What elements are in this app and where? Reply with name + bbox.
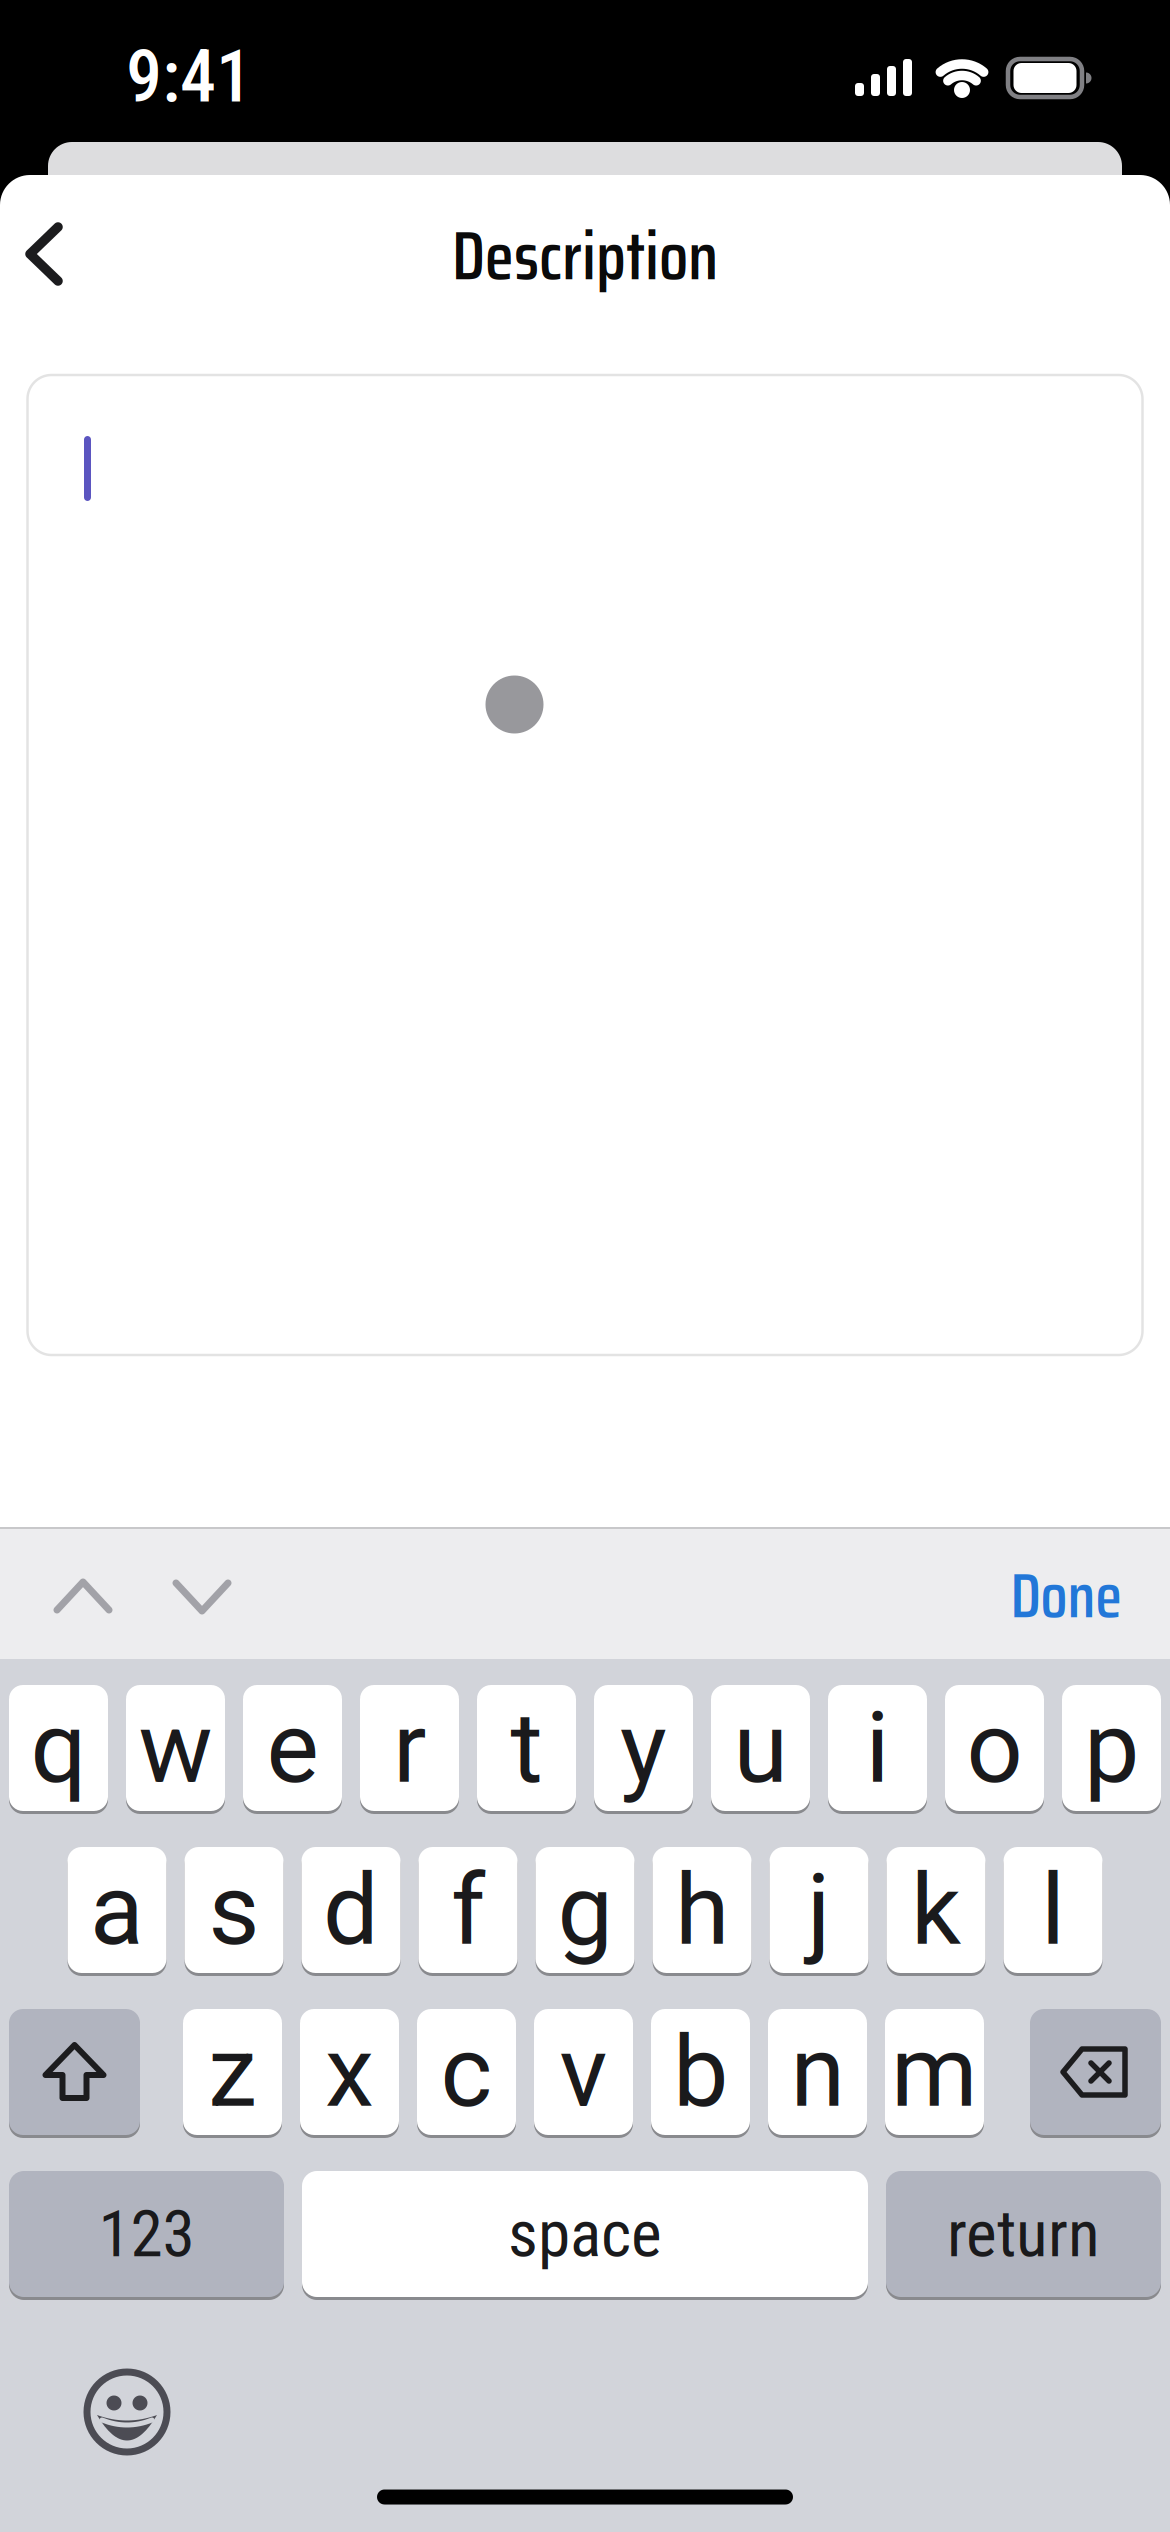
button[interactable]: l [1003, 1847, 1102, 1973]
button[interactable]: h [652, 1847, 751, 1973]
button[interactable]: k [886, 1847, 985, 1973]
button[interactable]: y [594, 1685, 693, 1811]
button[interactable]: m [885, 2009, 984, 2135]
button[interactable]: Emoji [79, 2364, 175, 2460]
staticText: q [30, 1690, 86, 1806]
button[interactable]: u [711, 1685, 810, 1811]
button[interactable]: Delete [1030, 2009, 1161, 2135]
button[interactable]: n [768, 2009, 867, 2135]
staticText: p [1084, 1690, 1139, 1806]
button[interactable]: t [477, 1685, 576, 1811]
staticText: u [733, 1690, 787, 1806]
staticText: return [947, 2196, 1100, 2272]
button[interactable]: return [886, 2171, 1161, 2297]
staticText: l [1041, 1852, 1065, 1968]
button[interactable]: j [769, 1847, 868, 1973]
button[interactable]: Done [1010, 1548, 1121, 1644]
staticText: v [559, 2014, 607, 2130]
staticText: d [323, 1852, 379, 1968]
staticText: o [966, 1690, 1022, 1806]
staticText: k [911, 1852, 961, 1968]
staticText: n [790, 2014, 844, 2130]
staticText: Description [452, 203, 718, 308]
staticText: m [891, 2014, 978, 2130]
staticText: Done [1010, 1548, 1121, 1644]
staticText: b [673, 2014, 728, 2130]
button[interactable]: d [301, 1847, 400, 1973]
button[interactable]: i [828, 1685, 927, 1811]
button[interactable]: w [126, 1685, 225, 1811]
button[interactable]: q [9, 1685, 108, 1811]
button[interactable]: Shift [9, 2009, 140, 2135]
button[interactable]: r [360, 1685, 459, 1811]
staticText: h [675, 1852, 729, 1968]
button[interactable]: z [183, 2009, 282, 2135]
staticText: s [208, 1852, 259, 1968]
button[interactable]: s [184, 1847, 283, 1973]
staticText: j [807, 1852, 831, 1968]
staticText: e [266, 1690, 318, 1806]
staticText: a [90, 1852, 144, 1968]
staticText: 123 [98, 2196, 194, 2272]
staticText: z [208, 2014, 257, 2130]
button[interactable]: x [300, 2009, 399, 2135]
staticText: r [393, 1690, 426, 1806]
button[interactable]: b [651, 2009, 750, 2135]
staticText: c [440, 2014, 492, 2130]
button[interactable]: Previous field [51, 1574, 115, 1618]
staticText: w [138, 1690, 212, 1806]
button[interactable]: v [534, 2009, 633, 2135]
staticText: t [510, 1690, 542, 1806]
button[interactable]: Back [22, 222, 66, 286]
button[interactable]: c [417, 2009, 516, 2135]
button[interactable]: e [243, 1685, 342, 1811]
staticText: i [865, 1690, 889, 1806]
button[interactable]: Next field [170, 1574, 234, 1618]
button[interactable]: f [418, 1847, 517, 1973]
button[interactable]: a [67, 1847, 166, 1973]
button[interactable]: 123 [9, 2171, 284, 2297]
button[interactable]: g [535, 1847, 634, 1973]
staticText: g [557, 1852, 612, 1968]
button[interactable]: p [1062, 1685, 1161, 1811]
staticText: space [508, 2196, 662, 2272]
button[interactable]: o [945, 1685, 1044, 1811]
button[interactable]: space [302, 2171, 868, 2297]
staticText: x [325, 2014, 374, 2130]
staticText: f [451, 1852, 485, 1968]
staticText: 9:41 [126, 35, 252, 119]
staticText: y [620, 1690, 667, 1806]
